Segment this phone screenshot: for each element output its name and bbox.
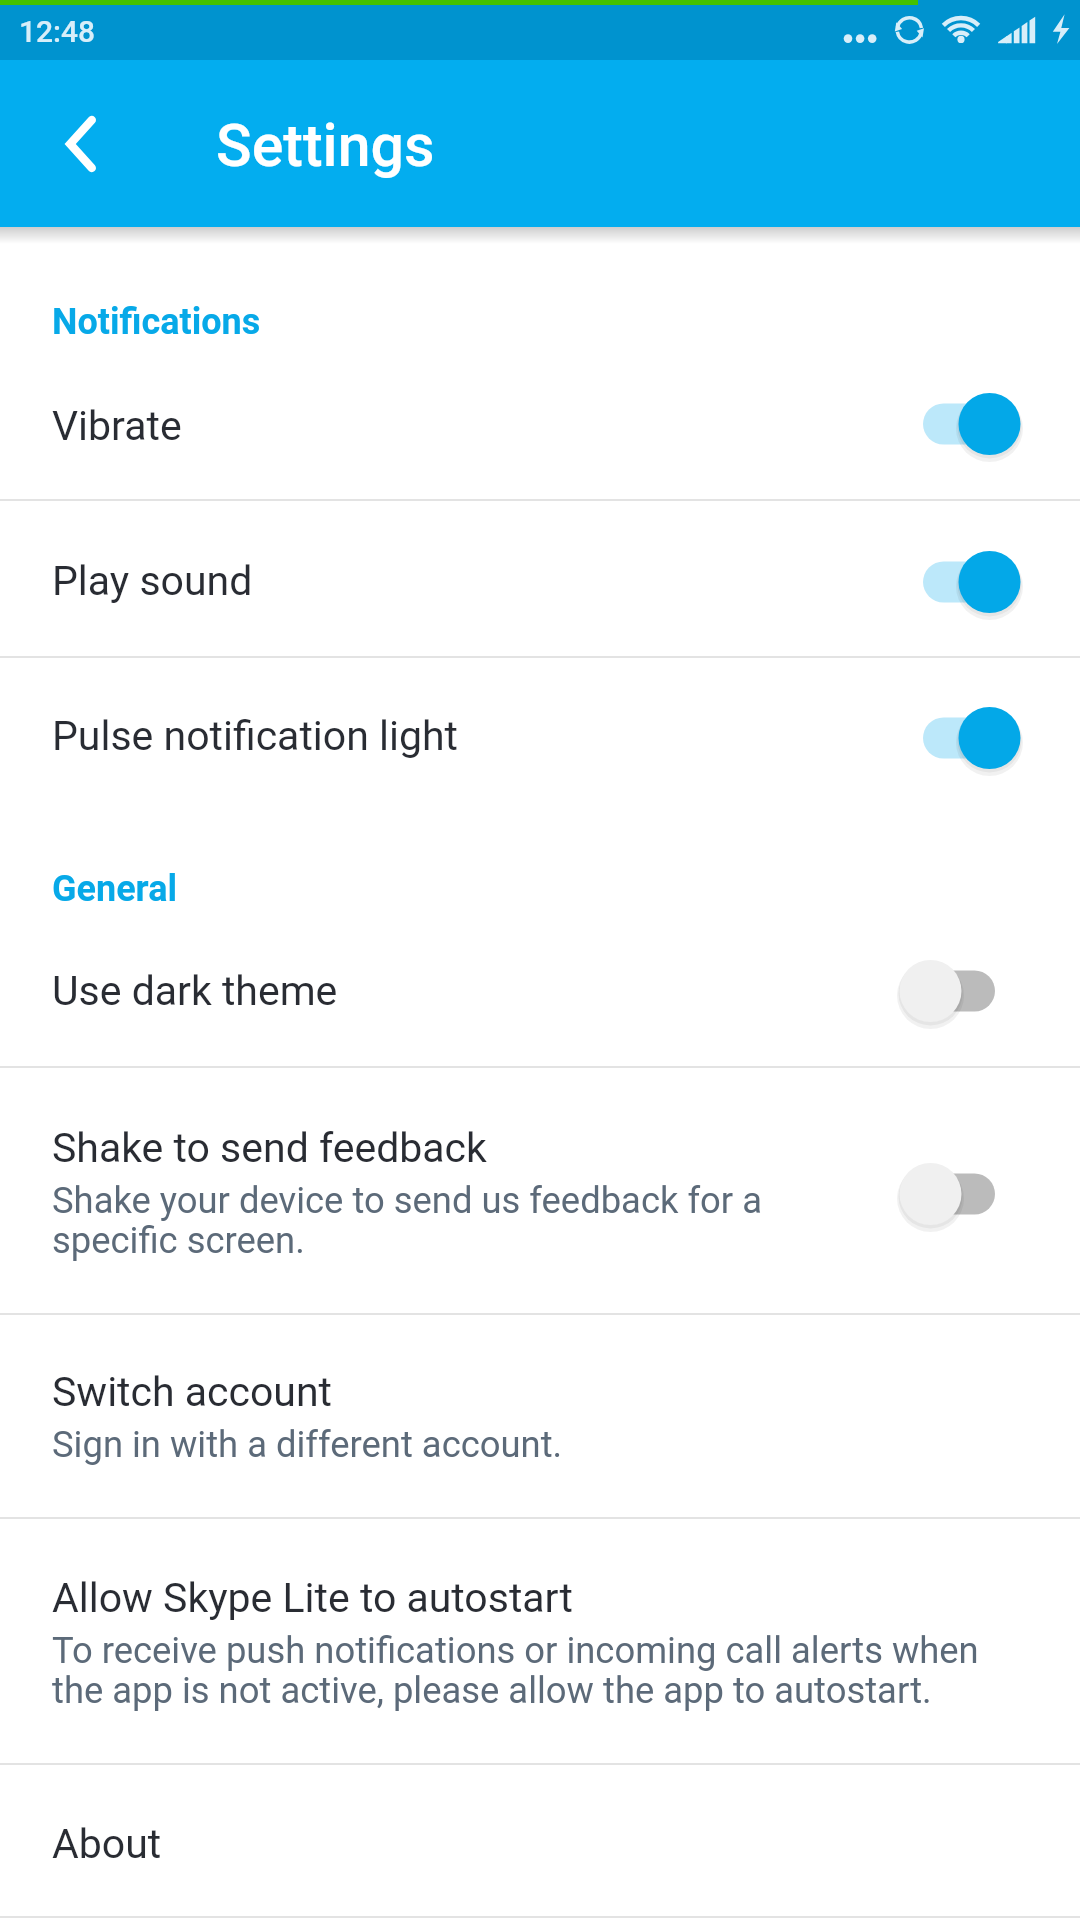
staticText: Use dark theme (52, 967, 338, 1015)
staticText: Switch account (52, 1368, 333, 1416)
staticText: Play sound (52, 557, 253, 605)
staticText: General (52, 868, 178, 910)
staticText: About (52, 1820, 162, 1868)
button[interactable]: Switch account (0, 1315, 1080, 1517)
staticText: Sign in with a different account. (52, 1423, 563, 1466)
staticText: 12:48 (19, 14, 96, 49)
staticText: Shake your device to send us feedback fo… (52, 1179, 870, 1262)
staticText: To receive push notifications or incomin… (52, 1629, 1016, 1712)
button[interactable]: Shake to send feedback (0, 1068, 1080, 1313)
staticText: Pulse notification light (52, 712, 458, 760)
staticText: Notifications (52, 301, 261, 343)
staticText: Shake to send feedback (52, 1124, 487, 1172)
button[interactable]: Back (21, 84, 141, 204)
staticText: Allow Skype Lite to autostart (52, 1574, 573, 1622)
button[interactable]: Use dark theme (0, 910, 1080, 1066)
button[interactable]: About (0, 1765, 1080, 1916)
button[interactable]: Pulse notification light (0, 658, 1080, 812)
button[interactable]: Vibrate (0, 343, 1080, 499)
staticText: Settings (216, 111, 435, 180)
button[interactable]: Allow Skype Lite to autostart (0, 1519, 1080, 1763)
button[interactable]: Play sound (0, 501, 1080, 656)
staticText: Vibrate (52, 402, 182, 450)
